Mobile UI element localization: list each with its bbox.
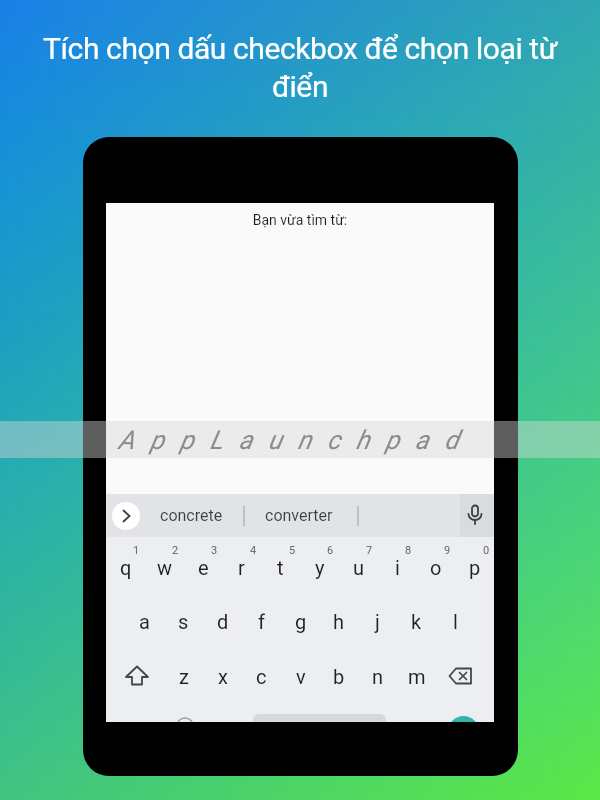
staticText: a [139,610,150,633]
staticText: c [256,665,267,688]
staticText: 5 [289,544,296,557]
staticText: 4 [250,544,257,557]
button[interactable]: t [261,540,300,594]
button[interactable] [448,716,479,722]
staticText: 6 [327,544,334,557]
staticText: x [218,665,228,688]
button[interactable]: r [222,540,261,594]
button[interactable]: o [416,540,455,594]
staticText: Bạn vừa tìm từ: [106,212,494,228]
button[interactable]: s [164,594,203,648]
staticText: concrete [160,506,223,525]
staticText: f [258,610,265,633]
staticText: 2 [172,544,179,557]
staticText: k [411,610,422,633]
button[interactable]: a [125,594,164,648]
button[interactable]: j [358,594,397,648]
button[interactable]: b [319,649,358,703]
button[interactable]: h [319,594,358,648]
staticText: l [453,610,458,633]
button[interactable]: l [436,594,475,648]
staticText: m [408,665,426,688]
button[interactable] [112,502,140,530]
staticText: g [295,610,307,633]
button[interactable]: v [281,649,320,703]
staticText: A p p L a u n c h p a d [118,425,464,455]
button[interactable] [119,658,155,694]
staticText: t [277,556,284,579]
staticText: e [198,556,209,579]
button[interactable]: y [300,540,339,594]
button[interactable]: n [358,649,397,703]
staticText: 7 [366,544,373,557]
staticText: converter [265,506,333,525]
button[interactable]: w [145,540,184,594]
button[interactable]: g [281,594,320,648]
staticText: i [395,556,400,579]
button[interactable] [443,658,479,694]
button[interactable]: q [106,540,145,594]
button[interactable]: k [397,594,436,648]
staticText: b [333,665,345,688]
button[interactable]: d [203,594,242,648]
button[interactable]: p [455,540,494,594]
staticText: r [238,556,245,579]
button[interactable]: concrete [151,494,231,537]
staticText: 0 [483,544,490,557]
staticText: s [178,610,189,633]
staticText: d [217,610,229,633]
button[interactable]: i [378,540,417,594]
staticText: Tích chọn dấu checkbox để chọn loại từ đ… [0,31,600,104]
staticText: w [157,556,173,579]
staticText: u [353,556,365,579]
staticText: v [296,665,306,688]
staticText: y [315,556,325,579]
button[interactable] [463,503,487,527]
staticText: h [333,610,345,633]
staticText: o [430,556,442,579]
staticText: 8 [405,544,412,557]
staticText: 9 [444,544,451,557]
button[interactable]: u [339,540,378,594]
button[interactable]: x [203,649,242,703]
staticText: 3 [211,544,218,557]
button[interactable]: converter [259,494,339,537]
button[interactable]: z [164,649,203,703]
staticText: z [179,665,189,688]
staticText: q [120,556,132,579]
button[interactable]: m [397,649,436,703]
staticText: j [375,610,380,633]
staticText: 1 [133,544,140,557]
button[interactable]: c [242,649,281,703]
button[interactable]: f [242,594,281,648]
staticText: n [372,665,384,688]
staticText: p [469,556,481,579]
button[interactable]: e [184,540,223,594]
